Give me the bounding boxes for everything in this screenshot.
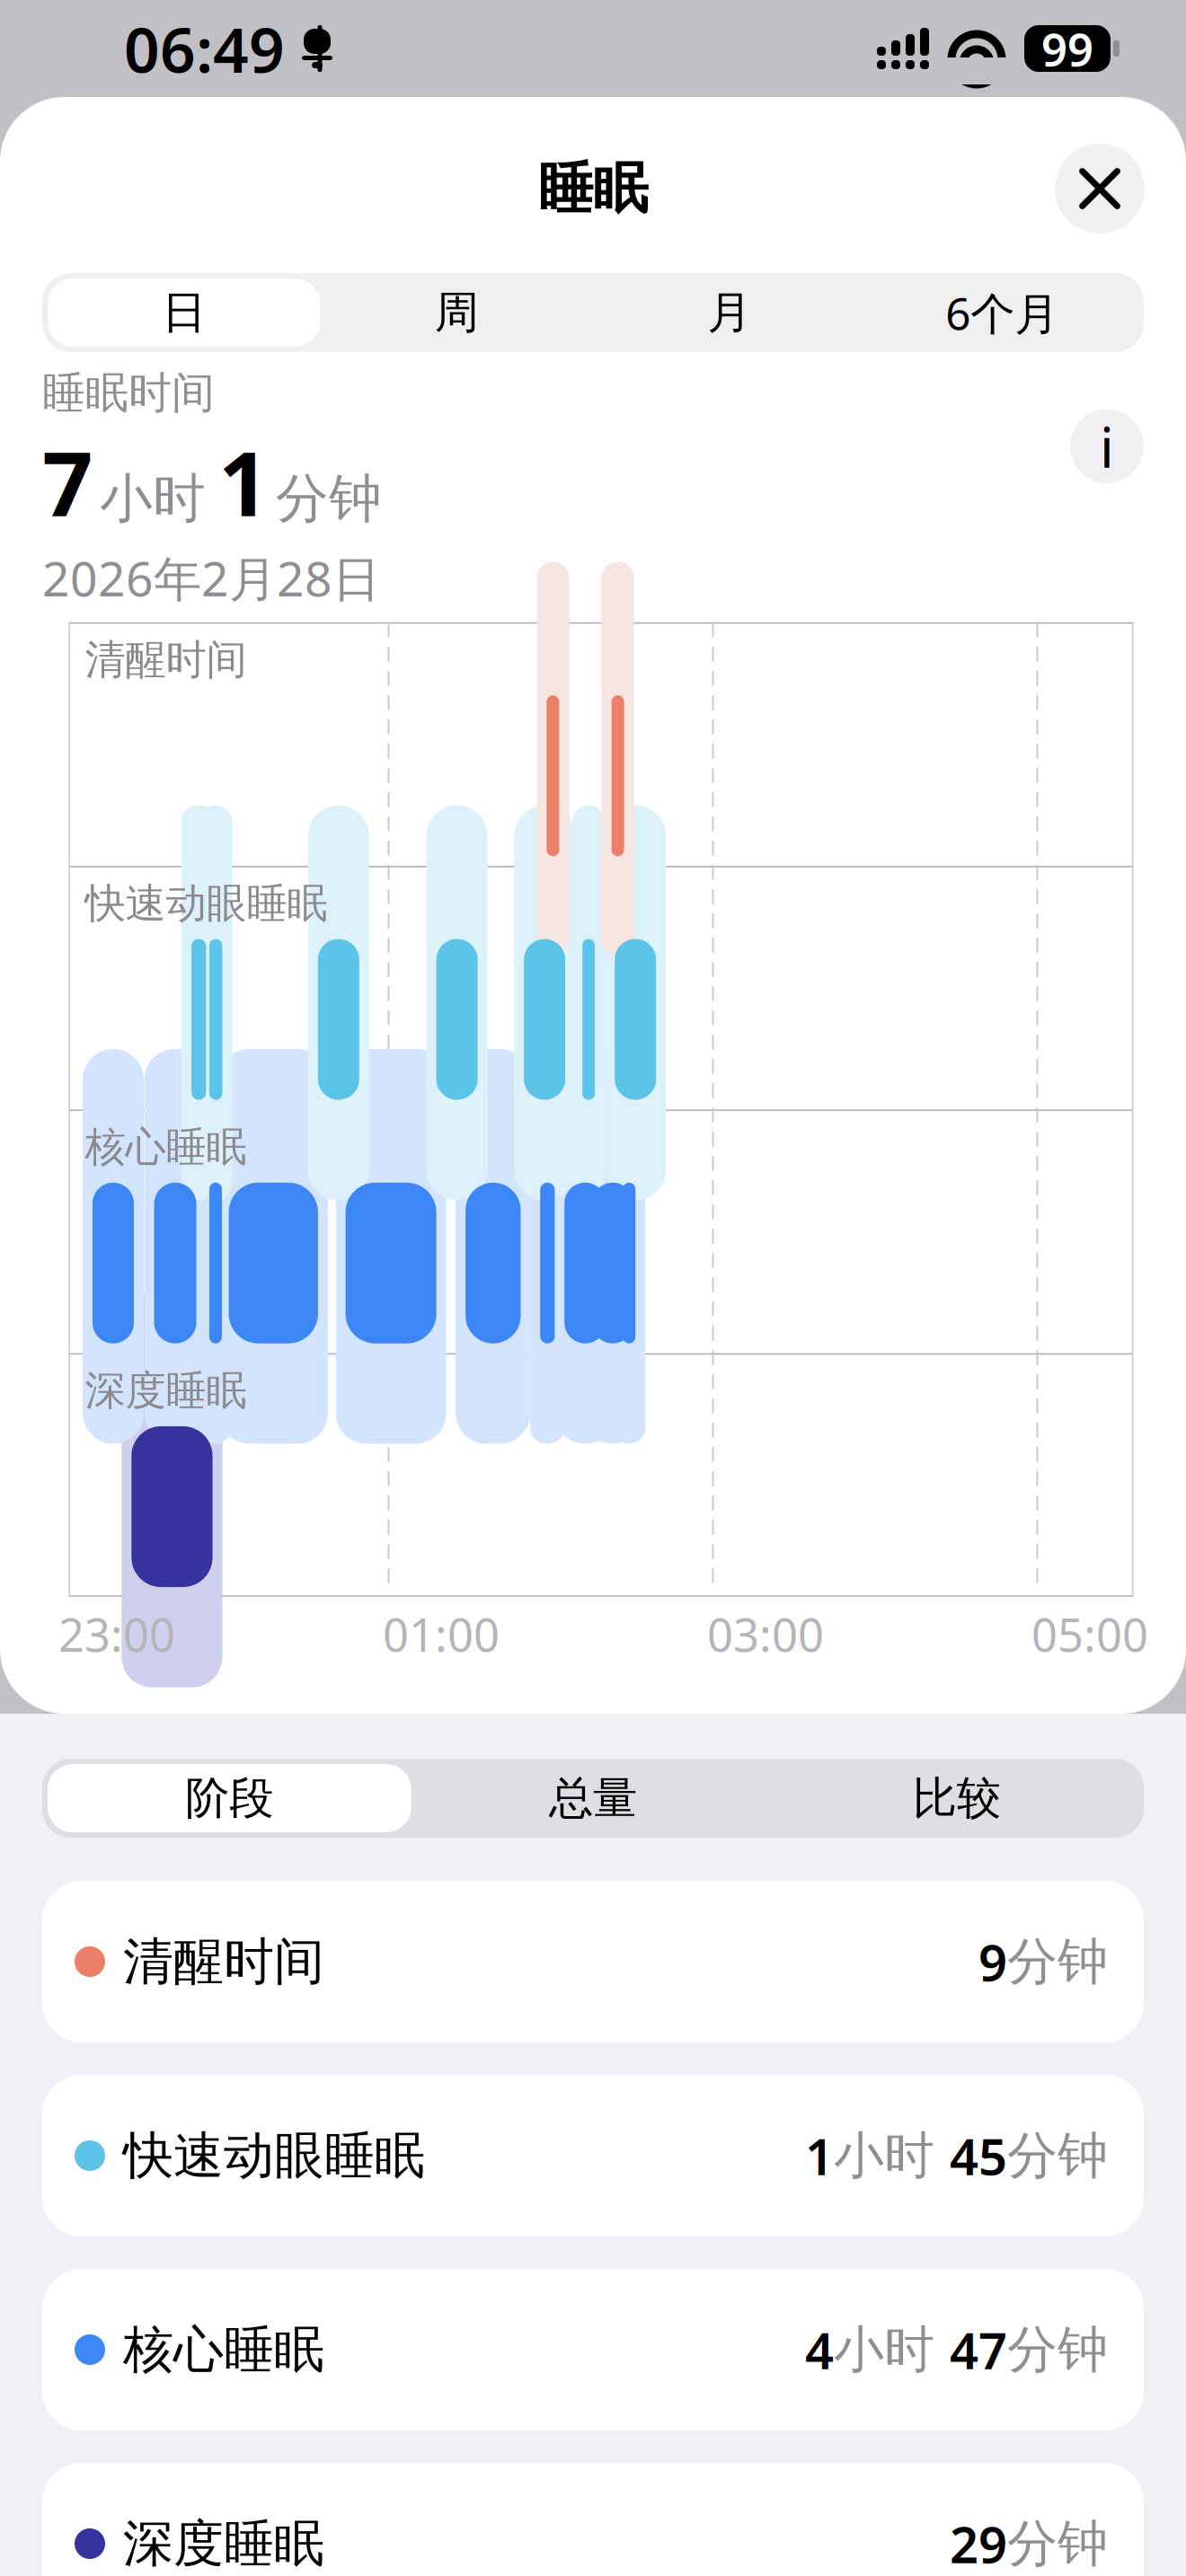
button[interactable]: 6个月: [866, 278, 1138, 347]
staticText: 总量: [549, 1771, 637, 1825]
staticText: 深度睡眠: [85, 1366, 247, 1416]
staticText: 清醒时间: [85, 635, 247, 685]
staticText: 睡眠: [538, 155, 648, 222]
staticText: 29: [950, 2510, 1007, 2576]
staticText: 比较: [913, 1771, 1001, 1825]
staticText: 快速动眼睡眠: [123, 2125, 425, 2187]
staticText: 深度睡眠: [123, 2513, 324, 2575]
staticText: 核心睡眠: [85, 1122, 247, 1172]
staticText: 分钟: [1007, 2513, 1108, 2575]
staticText: 6个月: [945, 283, 1059, 342]
staticText: 45: [950, 2122, 1007, 2189]
staticText: 1: [218, 423, 269, 541]
staticText: 47: [950, 2316, 1007, 2383]
button[interactable]: 关闭: [1055, 144, 1145, 234]
staticText: 小时: [834, 2125, 950, 2187]
button[interactable]: 总量: [411, 1764, 775, 1832]
button[interactable]: 核心睡眠: [42, 2269, 1144, 2430]
staticText: 99: [1041, 18, 1093, 79]
staticText: 清醒时间: [123, 1931, 324, 1993]
staticText: 9: [978, 1928, 1007, 1995]
staticText: 分钟: [1007, 1931, 1108, 1993]
staticText: 日: [162, 285, 206, 340]
staticText: i: [1100, 410, 1114, 483]
staticText: 23:00: [58, 1604, 175, 1664]
staticText: 分钟: [1007, 2125, 1108, 2187]
staticText: 周: [435, 285, 479, 340]
staticText: 核心睡眠: [123, 2319, 324, 2381]
staticText: 阶段: [185, 1771, 273, 1825]
button[interactable]: 快速动眼睡眠: [42, 2075, 1144, 2236]
staticText: 小时: [100, 466, 206, 531]
button[interactable]: 深度睡眠: [42, 2463, 1144, 2576]
staticText: 7: [42, 423, 93, 541]
button[interactable]: 月: [593, 278, 866, 347]
staticText: 睡眠时间: [42, 366, 215, 419]
button[interactable]: 清醒时间: [42, 1881, 1144, 2042]
staticText: 快速动眼睡眠: [85, 879, 327, 929]
staticText: 分钟: [276, 466, 382, 531]
staticText: 1: [805, 2122, 834, 2189]
staticText: 2026年2月28日: [42, 546, 380, 610]
button[interactable]: 阶段: [48, 1764, 411, 1832]
button[interactable]: 更多信息: [1070, 410, 1144, 483]
staticText: 05:00: [1031, 1604, 1148, 1664]
staticText: 小时: [834, 2319, 950, 2381]
staticText: 03:00: [707, 1604, 824, 1664]
button[interactable]: 周: [320, 278, 593, 347]
button[interactable]: 比较: [775, 1764, 1138, 1832]
staticText: 4: [805, 2316, 834, 2383]
button[interactable]: 日: [48, 278, 320, 347]
staticText: 01:00: [383, 1604, 500, 1664]
staticText: 月: [707, 285, 751, 340]
staticText: 06:49: [124, 7, 285, 90]
staticText: 分钟: [1007, 2319, 1108, 2381]
